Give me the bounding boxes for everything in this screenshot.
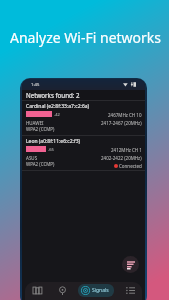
staticText: 2467MHz CH 10: [108, 112, 142, 118]
button[interactable]: Maps: [25, 282, 50, 299]
button[interactable]: Sort networks: [122, 256, 139, 273]
staticText: -42: [54, 112, 60, 117]
staticText: Leon (a0:8f:11:e6:c2:f3): [26, 138, 81, 145]
button[interactable]: Details: [118, 282, 142, 299]
other: Tab: [58, 286, 67, 295]
staticText: 2417-2467 (20MHz): [101, 120, 142, 126]
staticText: 2412MHz CH 1: [111, 147, 142, 153]
button[interactable]: Leon (a0:8f:11:e6:c2:f3): [22, 136, 145, 170]
button[interactable]: Cardinal (e2:8f:33:a7:c2:6a): [22, 101, 145, 135]
staticText: -65: [48, 147, 54, 152]
staticText: Analyze Wi-Fi networks: [10, 28, 162, 47]
button[interactable]: Signals: [74, 282, 118, 299]
staticText: HUAWEI: [26, 120, 44, 126]
staticText: 2402-2422 (20MHz): [101, 155, 142, 161]
staticText: 1:45: [31, 82, 40, 88]
staticText: Connected: [119, 163, 142, 169]
other: Tab: [126, 286, 135, 295]
staticText: Signals: [92, 287, 109, 294]
staticText: Cardinal (e2:8f:33:a7:c2:6a): [26, 103, 90, 110]
staticText: WPA2 (CCMP): [26, 161, 55, 167]
other: Tab: [81, 286, 90, 295]
button[interactable]: Channels: [50, 282, 74, 299]
staticText: WPA2 (CCMP): [26, 126, 55, 132]
other: Tab: [33, 286, 42, 295]
staticText: Networks found: 2: [26, 91, 80, 99]
staticText: ASUS: [26, 155, 38, 161]
